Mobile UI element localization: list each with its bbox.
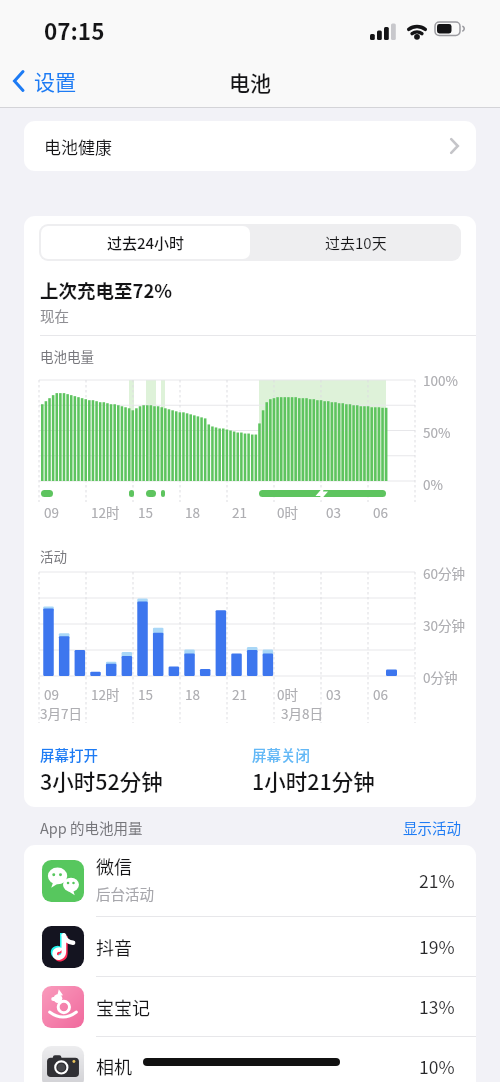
staticText: 电池 — [229, 67, 271, 97]
staticText: 03 — [326, 684, 341, 704]
staticText: 15 — [138, 684, 153, 704]
staticText: 50% — [423, 422, 451, 442]
staticText: 相机 — [96, 1053, 132, 1079]
staticText: 过去24小时 — [107, 232, 185, 254]
staticText: 3月8日 — [281, 703, 323, 723]
staticText: 3月7日 — [40, 703, 82, 723]
staticText: 微信 — [96, 853, 132, 879]
staticText: 屏幕关闭 — [252, 744, 310, 765]
staticText: 1小时21分钟 — [252, 765, 375, 796]
staticText: 21% — [419, 868, 455, 893]
staticText: 电池健康 — [44, 134, 112, 159]
staticText: 06 — [373, 502, 388, 522]
button[interactable]: 抖音 — [24, 917, 476, 976]
staticText: 30分钟 — [423, 615, 465, 635]
staticText: 0时 — [277, 502, 298, 522]
button[interactable]: 过去10天 — [250, 224, 461, 261]
staticText: 19% — [419, 934, 455, 959]
staticText: 屏幕打开 — [40, 744, 98, 765]
staticText: App 的电池用量 — [40, 817, 143, 838]
staticText: 06 — [373, 684, 388, 704]
button[interactable]: 相机 — [24, 1037, 476, 1082]
button[interactable]: 电池健康 — [24, 121, 476, 171]
staticText: 抖音 — [96, 934, 132, 960]
staticText: 0时 — [277, 684, 298, 704]
staticText: 12时 — [91, 502, 120, 522]
staticText: 21 — [232, 684, 247, 704]
staticText: 07:15 — [44, 14, 105, 47]
staticText: 09 — [44, 684, 59, 704]
button[interactable]: 设置 — [12, 66, 76, 96]
staticText: 18 — [185, 684, 200, 704]
button[interactable]: 微信 — [24, 845, 476, 916]
staticText: 13% — [419, 994, 455, 1019]
staticText: 后台活动 — [96, 883, 154, 904]
staticText: 100% — [423, 370, 458, 390]
staticText: 12时 — [91, 684, 120, 704]
staticText: 03 — [326, 502, 341, 522]
staticText: 09 — [44, 502, 59, 522]
staticText: 上次充电至72% — [40, 277, 173, 304]
staticText: 10% — [419, 1054, 455, 1079]
staticText: 60分钟 — [423, 563, 465, 583]
staticText: 15 — [138, 502, 153, 522]
staticText: 18 — [185, 502, 200, 522]
staticText: 21 — [232, 502, 247, 522]
staticText: 0分钟 — [423, 667, 458, 687]
staticText: 0% — [423, 474, 443, 494]
staticText: 宝宝记 — [96, 994, 150, 1020]
staticText: 电池电量 — [40, 346, 94, 366]
staticText: 设置 — [34, 66, 76, 96]
staticText: 过去10天 — [325, 232, 387, 254]
button[interactable]: 宝宝记 — [24, 977, 476, 1036]
button[interactable]: 显示活动 — [403, 817, 461, 838]
staticText: 现在 — [40, 305, 69, 326]
staticText: 3小时52分钟 — [40, 765, 163, 796]
staticText: 活动 — [40, 546, 67, 566]
button[interactable]: 过去24小时 — [41, 226, 250, 259]
